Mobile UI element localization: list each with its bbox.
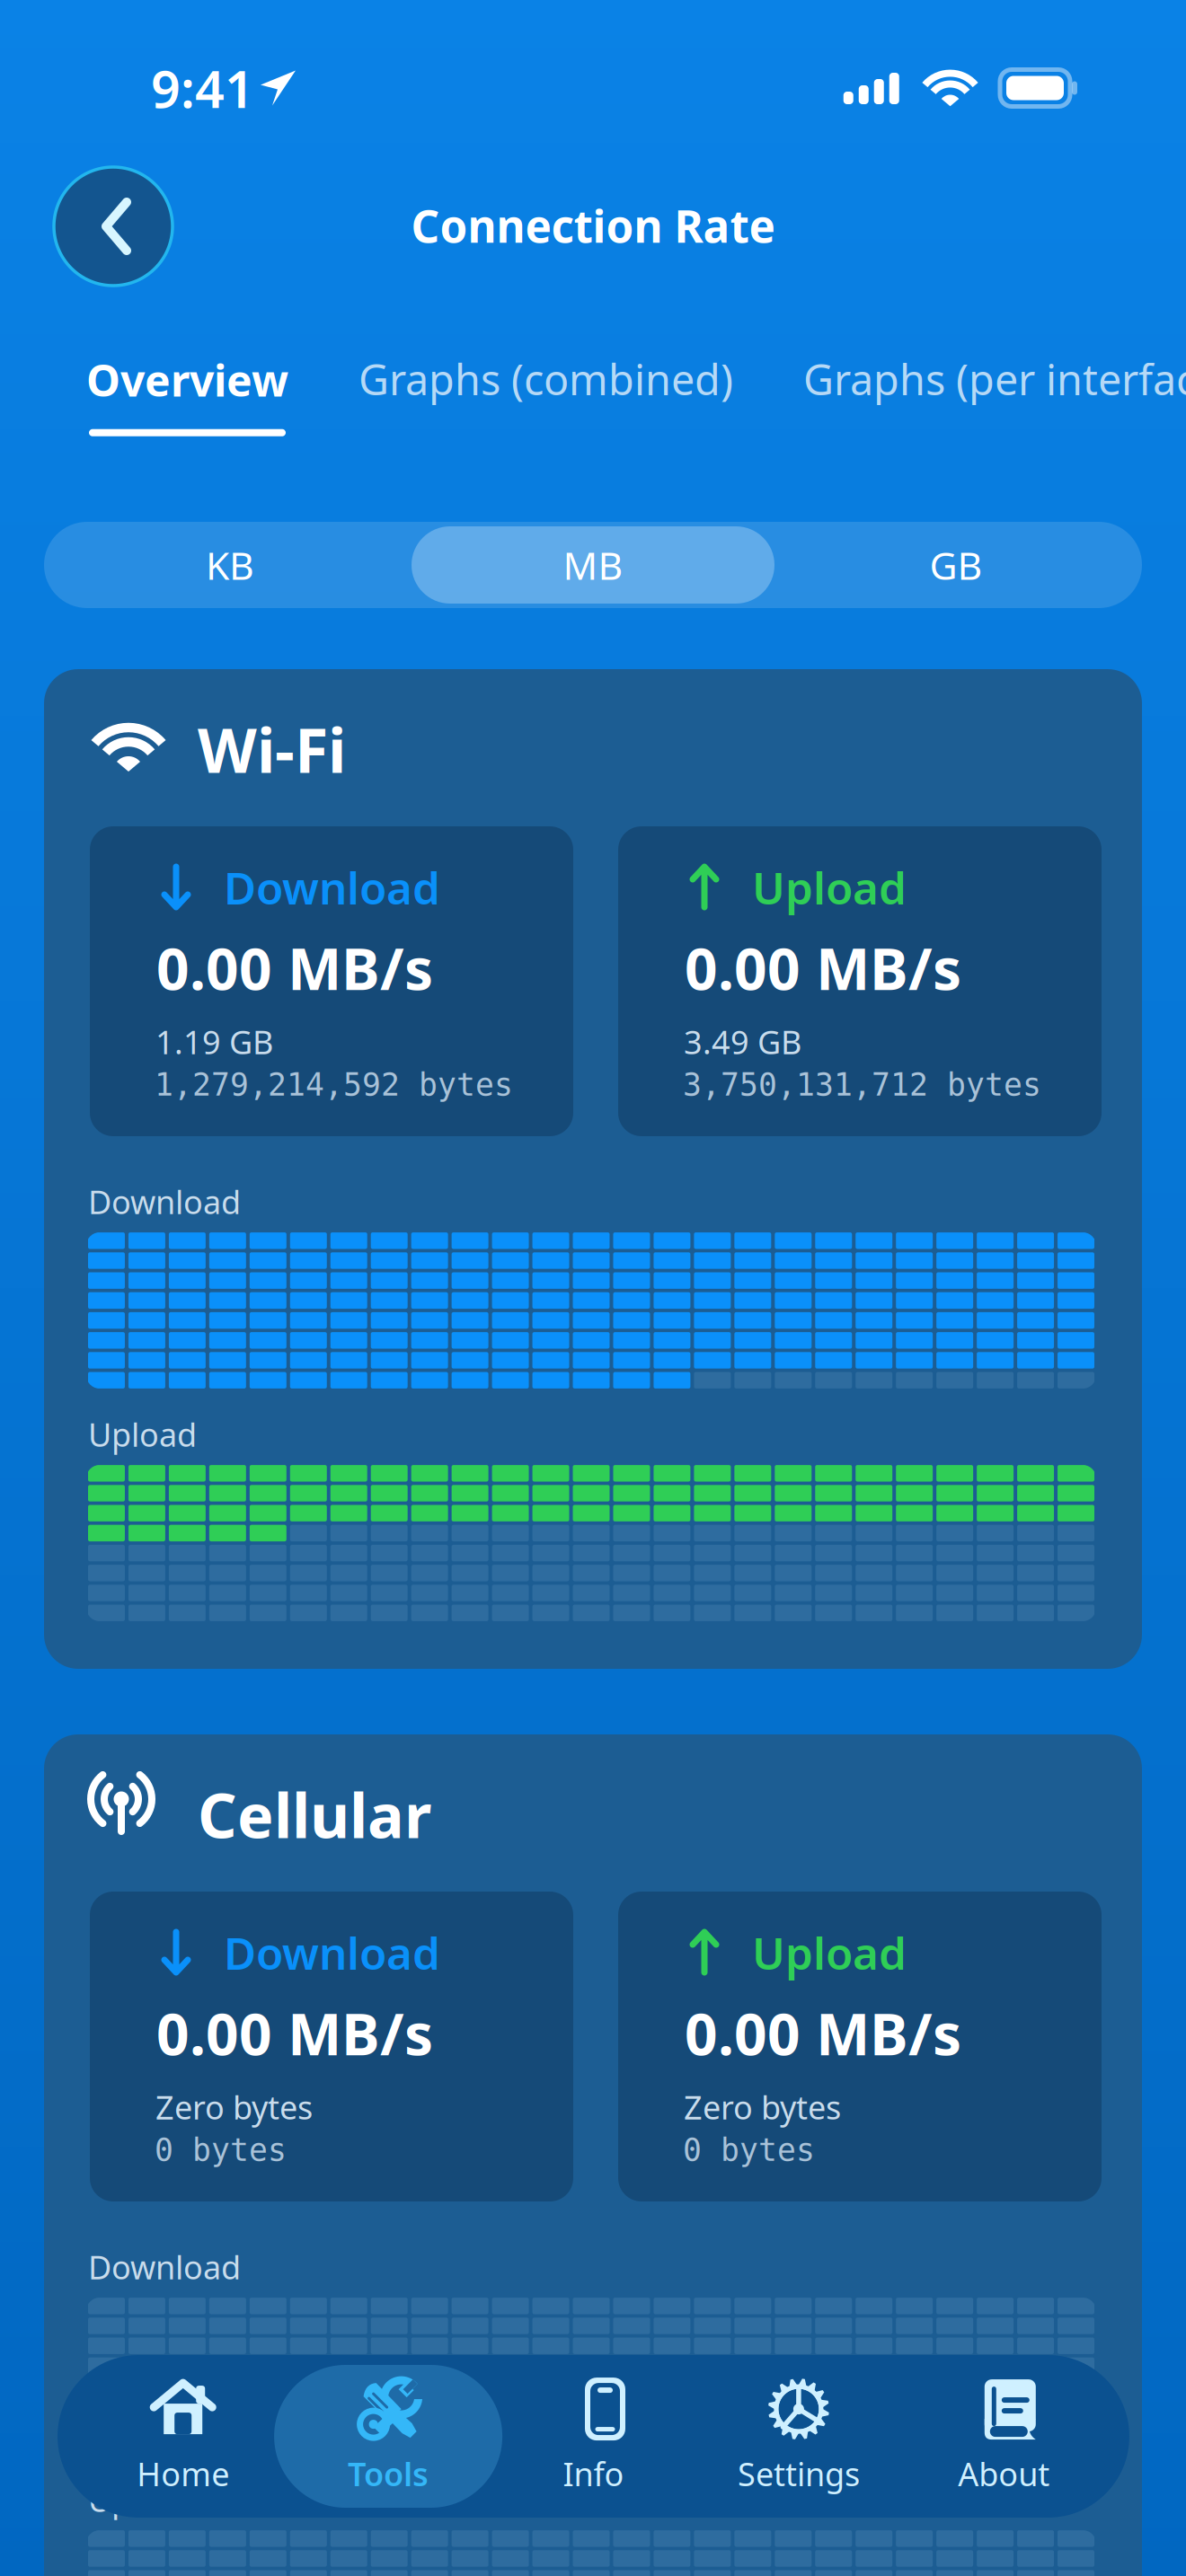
staticText: Download [224, 1923, 440, 1982]
staticText: About [958, 2452, 1050, 2495]
staticText: 1,279,214,592 bytes [155, 1067, 513, 1102]
button[interactable]: Graphs (combined) [358, 351, 733, 407]
staticText: Graphs (per interface) [803, 351, 1186, 407]
staticText: 0.00 MB/s [685, 930, 961, 1006]
staticText: Download [88, 1180, 241, 1223]
staticText: Upload [752, 1923, 907, 1982]
staticText: MB [563, 540, 623, 590]
staticText: Upload [88, 2478, 197, 2521]
button[interactable]: Info [491, 2355, 696, 2518]
staticText: Overview [86, 351, 288, 408]
staticText: Tools [348, 2452, 429, 2495]
staticText: Zero bytes [684, 2086, 841, 2129]
button[interactable]: Settings [696, 2355, 901, 2518]
button[interactable]: Home [80, 2355, 286, 2518]
staticText: 0.00 MB/s [685, 1995, 961, 2071]
staticText: Graphs (combined) [358, 351, 733, 407]
staticText: GB [929, 540, 982, 590]
staticText: Info [563, 2452, 624, 2495]
staticText: 0 bytes [155, 2132, 287, 2168]
button[interactable]: Back [54, 167, 173, 286]
staticText: Upload [88, 1413, 197, 1456]
staticText: Settings [738, 2452, 860, 2495]
staticText: 0 bytes [683, 2132, 815, 2168]
staticText: 9:41 [151, 54, 254, 122]
staticText: 0.00 MB/s [156, 1995, 433, 2071]
staticText: 3,750,131,712 bytes [683, 1067, 1041, 1102]
staticText: Download [224, 858, 440, 917]
button[interactable]: Overview [86, 351, 288, 436]
staticText: Cellular [198, 1774, 431, 1855]
staticText: Download [88, 2245, 241, 2288]
button[interactable]: Tools [286, 2355, 491, 2518]
staticText: Home [137, 2452, 229, 2495]
button[interactable]: MB [412, 526, 774, 604]
staticText: 3.49 GB [684, 1020, 801, 1063]
button[interactable]: GB [774, 526, 1137, 604]
staticText: Zero bytes [155, 2086, 313, 2129]
button[interactable]: About [901, 2355, 1106, 2518]
staticText: Upload [752, 858, 907, 917]
staticText: Connection Rate [411, 196, 775, 255]
button[interactable]: Graphs (per interface) [803, 351, 1186, 407]
staticText: 0.00 MB/s [156, 930, 433, 1006]
staticText: KB [206, 540, 254, 590]
staticText: 1.19 GB [155, 1020, 273, 1063]
button[interactable]: KB [49, 526, 412, 604]
staticText: Wi-Fi [198, 709, 346, 790]
